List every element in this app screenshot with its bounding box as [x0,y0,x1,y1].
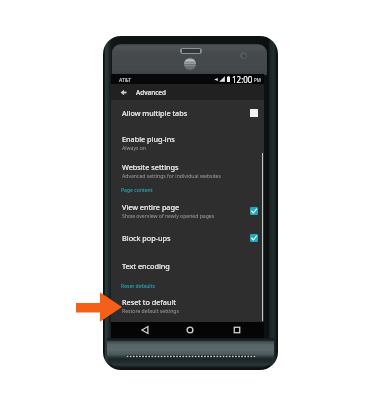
staticText: Reset to default [122,297,176,307]
staticText: Text encoding [122,261,170,271]
staticText: Block pop-ups [122,233,171,243]
staticText: Allow multiple tabs [122,108,188,118]
button[interactable]: Navigate up [111,84,136,100]
staticText: View entire page [122,202,180,212]
button[interactable]: Text encoding [111,252,264,279]
staticText: PM [254,77,261,83]
staticText: Always on [122,145,147,152]
button[interactable]: Allow multiple tabs [111,97,264,128]
staticText: 12:00 [232,74,253,84]
staticText: Show overview of newly opened pages [122,213,215,220]
button[interactable]: Home [180,322,200,338]
staticText: Restore default settings [122,308,179,315]
button[interactable]: Block pop-ups [111,224,264,252]
staticText: Reset defaults [121,283,155,290]
staticText: AT&T [119,76,132,83]
staticText: Website settings [122,162,179,172]
button[interactable]: Enable plug-ins [111,128,264,157]
button[interactable]: Reset to default [111,293,264,319]
button[interactable]: Back [135,322,155,338]
staticText: Advanced settings for individual website… [122,173,221,180]
staticText: Page content [121,187,153,194]
button[interactable]: Website settings [111,157,264,184]
button[interactable]: View entire page [111,197,264,224]
staticText: Enable plug-ins [122,134,175,144]
staticText: Advanced [136,88,166,97]
button[interactable]: Recent apps [227,322,247,338]
